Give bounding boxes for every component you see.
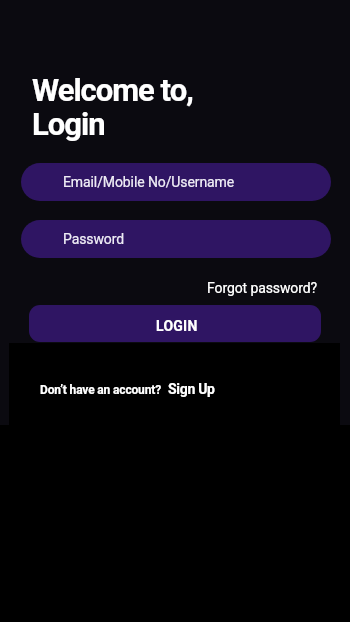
button[interactable]: Email/Mobile No/Username xyxy=(21,163,331,201)
staticText: Email/Mobile No/Username xyxy=(63,174,235,190)
button[interactable]: LOGIN xyxy=(29,305,321,342)
button[interactable]: Sign Up xyxy=(168,381,215,397)
staticText: Sign Up xyxy=(168,381,215,397)
staticText: Login xyxy=(32,106,105,142)
staticText: LOGIN xyxy=(156,318,198,334)
staticText: Don’t have an account? xyxy=(40,383,161,397)
button[interactable]: Password xyxy=(21,220,331,258)
staticText: Forgot password? xyxy=(207,280,318,296)
staticText: Password xyxy=(63,231,125,247)
staticText: Welcome to, xyxy=(32,72,193,108)
button[interactable]: Forgot password? xyxy=(188,276,318,300)
